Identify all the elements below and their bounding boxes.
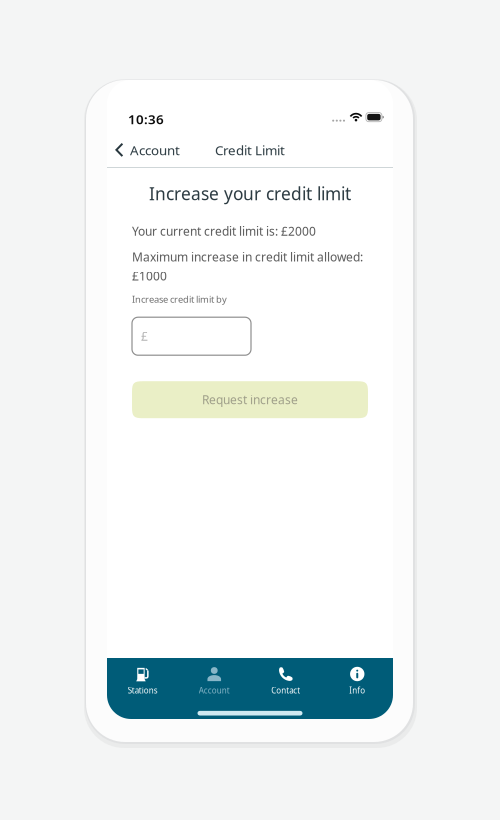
button[interactable]: Request increase (132, 381, 368, 418)
staticText: Credit Limit (215, 141, 285, 159)
staticText: Contact (271, 685, 300, 696)
button[interactable]: Stations (107, 658, 178, 702)
button[interactable]: Account (178, 658, 250, 702)
staticText: Increase credit limit by (132, 293, 227, 305)
staticText: Info (349, 685, 365, 696)
staticText: 10:36 (128, 110, 164, 128)
staticText: Request increase (202, 392, 298, 408)
staticText: Account (199, 685, 230, 696)
staticText: £1000 (132, 268, 167, 284)
button[interactable]: Contact (250, 658, 321, 702)
staticText: Maximum increase in credit limit allowed… (132, 249, 363, 265)
button[interactable]: Info (321, 658, 393, 702)
staticText: Increase your credit limit (149, 182, 351, 205)
staticText: Your current credit limit is: £2000 (132, 223, 316, 239)
button[interactable]: Account (107, 135, 190, 165)
staticText: Stations (128, 685, 158, 696)
staticText: Account (130, 141, 180, 159)
staticText: £ (141, 328, 148, 344)
